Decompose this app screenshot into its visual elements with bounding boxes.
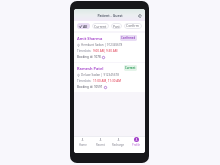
staticText: Current — [94, 24, 107, 29]
staticText: Hemkunt Sadan | 912345678 — [81, 43, 123, 47]
button[interactable]: Recent — [91, 137, 109, 147]
button[interactable]: Profile — [127, 137, 145, 147]
button[interactable]: Confirmed — [124, 23, 142, 29]
staticText: Amit Sharma — [77, 36, 103, 41]
staticText: Deluxe Sadan | 912345678 — [81, 73, 119, 77]
button[interactable]: Current — [92, 23, 109, 29]
staticText: 11:00 AM, 11:30 AM — [93, 79, 121, 83]
button[interactable]: Refresh — [136, 12, 143, 19]
staticText: Past — [113, 24, 120, 29]
staticText: Home — [79, 143, 87, 147]
staticText: Patient - Guest — [97, 13, 123, 18]
staticText: Booking id: 1078 — [77, 55, 101, 59]
button[interactable]: Home — [74, 137, 91, 147]
staticText: Timeslots: — [77, 79, 93, 83]
button[interactable]: Ramesh Patel — [74, 63, 145, 92]
button[interactable]: Amit Sharma — [74, 33, 145, 62]
staticText: Current — [125, 66, 136, 70]
staticText: 9:00 AM, 9:30 AM — [93, 49, 118, 53]
staticText: Confirmed — [121, 36, 136, 40]
staticText: Booking id: 10591 — [77, 85, 103, 89]
staticText: Recharge — [112, 143, 124, 147]
button[interactable]: Past — [111, 23, 122, 29]
staticText: Profile — [132, 143, 141, 147]
staticText: All — [83, 24, 88, 29]
staticText: Ramesh Patel — [77, 66, 104, 71]
staticText: Timeslots: — [77, 49, 93, 53]
button[interactable]: Recharge — [109, 137, 127, 147]
staticText: Confirmed — [126, 23, 140, 29]
button[interactable]: All — [77, 23, 90, 29]
staticText: Recent — [96, 143, 105, 147]
